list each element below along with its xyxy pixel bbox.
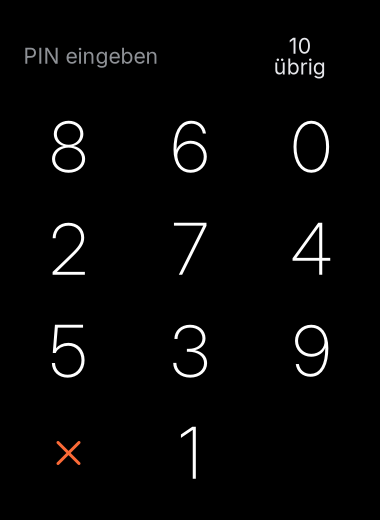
staticText: 4 <box>290 206 332 292</box>
button[interactable]: Delete <box>8 402 129 504</box>
staticText: PIN eingeben <box>23 43 158 69</box>
staticText: 7 <box>172 206 208 292</box>
staticText: 1 <box>178 410 201 496</box>
button[interactable]: 9 <box>251 300 372 402</box>
button[interactable]: 4 <box>251 198 372 300</box>
staticText: 0 <box>291 104 332 190</box>
staticText: 6 <box>171 104 209 190</box>
staticText: 9 <box>292 308 330 394</box>
staticText: 10 <box>289 33 311 59</box>
staticText: 2 <box>49 206 87 292</box>
button[interactable]: 5 <box>8 300 129 402</box>
button[interactable]: 7 <box>129 198 251 300</box>
button[interactable]: 1 <box>129 402 251 504</box>
staticText: 5 <box>49 308 87 394</box>
button[interactable]: 8 <box>8 96 129 198</box>
staticText: 3 <box>170 308 209 394</box>
staticText: 8 <box>49 104 87 190</box>
button[interactable]: 2 <box>8 198 129 300</box>
button[interactable]: 6 <box>129 96 251 198</box>
button[interactable]: 3 <box>129 300 251 402</box>
staticText: übrig <box>274 54 326 80</box>
button[interactable]: 0 <box>251 96 372 198</box>
